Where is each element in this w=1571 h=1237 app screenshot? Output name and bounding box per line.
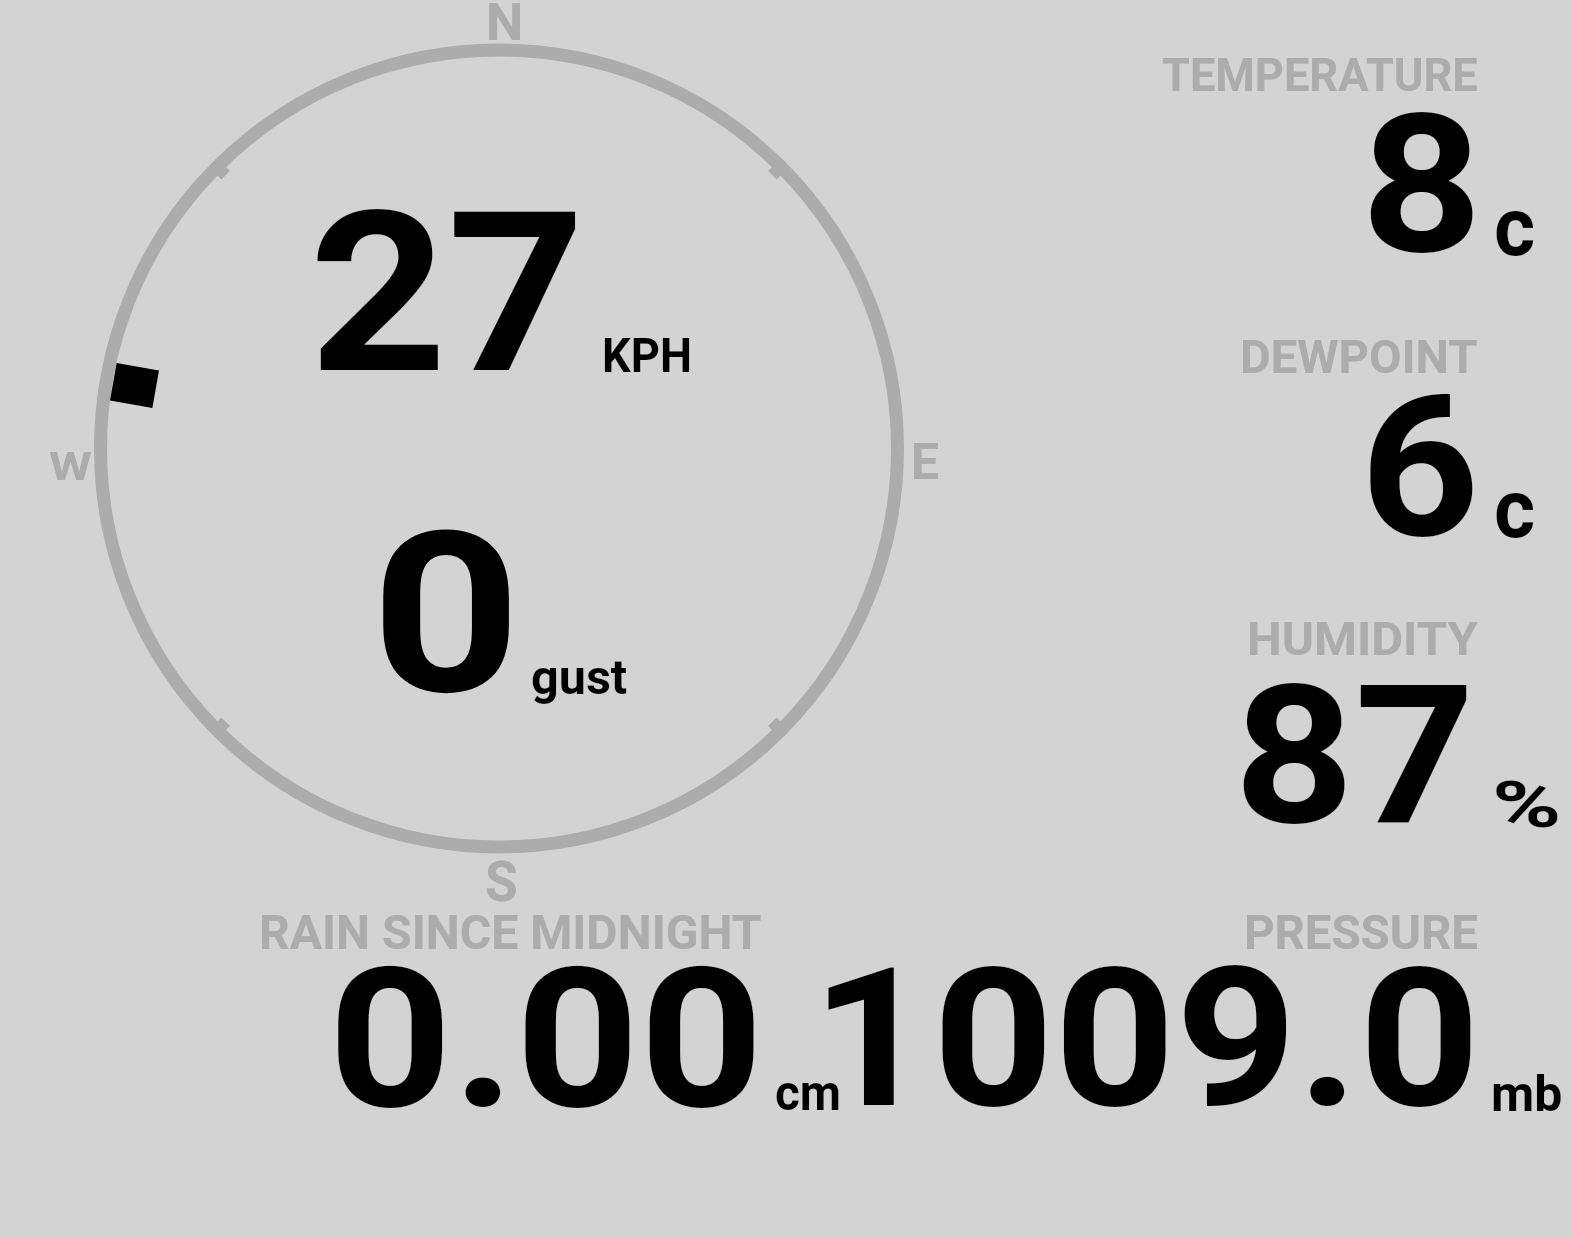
- button[interactable]: Wind 27 KPH, gusting 0, direction WNW: [85, 35, 915, 865]
- staticText: 0.00: [328, 926, 764, 1153]
- staticText: 6: [1360, 353, 1480, 583]
- staticText: cm: [775, 1064, 842, 1123]
- staticText: mb: [1491, 1065, 1563, 1124]
- staticText: HUMIDITY: [1247, 612, 1478, 666]
- button[interactable]: Pressure 1009.0 mb: [860, 900, 1571, 1120]
- button[interactable]: Dewpoint 6 degrees C: [1120, 320, 1571, 550]
- staticText: 27: [309, 164, 585, 424]
- button[interactable]: Rain since midnight 0.00 cm: [250, 900, 850, 1120]
- button[interactable]: Temperature 8 degrees C: [1120, 40, 1571, 270]
- staticText: RAIN SINCE MIDNIGHT: [259, 904, 762, 960]
- staticText: 1009.0: [811, 926, 1480, 1152]
- staticText: KPH: [602, 327, 692, 383]
- staticText: E: [911, 433, 940, 492]
- staticText: c: [1494, 180, 1536, 275]
- staticText: N: [486, 0, 524, 53]
- staticText: gust: [531, 649, 628, 705]
- staticText: S: [485, 850, 518, 914]
- staticText: %: [1492, 767, 1562, 843]
- staticText: W: [49, 445, 93, 490]
- staticText: PRESSURE: [1244, 904, 1478, 960]
- staticText: TEMPERATURE: [1162, 48, 1478, 102]
- staticText: 87: [1234, 643, 1476, 869]
- staticText: DEWPOINT: [1240, 330, 1478, 384]
- button[interactable]: Humidity 87 percent: [1120, 600, 1571, 835]
- staticText: 8: [1361, 72, 1483, 298]
- staticText: 0: [371, 483, 522, 746]
- staticText: c: [1494, 462, 1536, 557]
